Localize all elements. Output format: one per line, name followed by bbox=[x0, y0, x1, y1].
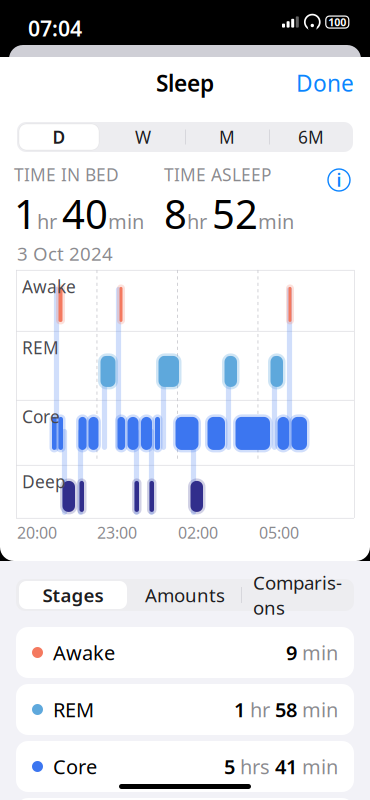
button[interactable]: Done bbox=[280, 58, 370, 108]
staticText: min bbox=[258, 208, 294, 235]
staticText: 9 bbox=[286, 639, 297, 666]
staticText: TIME IN BED bbox=[14, 163, 119, 186]
staticText: Stages bbox=[42, 583, 103, 607]
staticText: 41 bbox=[275, 753, 297, 780]
staticText: M bbox=[219, 125, 235, 148]
button[interactable]: Stages bbox=[17, 579, 129, 611]
staticText: 1 bbox=[234, 696, 245, 723]
staticText: Core bbox=[22, 405, 60, 428]
button[interactable]: 6M bbox=[269, 122, 353, 152]
staticText: 02:00 bbox=[178, 522, 218, 543]
staticText: hr bbox=[37, 208, 57, 235]
staticText: min bbox=[297, 696, 338, 723]
staticText: min bbox=[297, 753, 338, 780]
staticText: hr bbox=[187, 208, 207, 235]
staticText: 6M bbox=[298, 125, 324, 148]
staticText: 58 bbox=[275, 696, 297, 723]
button[interactable]: D bbox=[17, 122, 101, 152]
staticText: Deep bbox=[22, 470, 66, 493]
button[interactable]: M bbox=[185, 122, 269, 152]
staticText: 52 bbox=[212, 187, 258, 240]
staticText: 05:00 bbox=[259, 522, 299, 543]
staticText: Done bbox=[296, 68, 354, 98]
staticText: Amounts bbox=[145, 583, 225, 607]
staticText: D bbox=[52, 125, 65, 148]
staticText: 8 bbox=[164, 187, 187, 240]
staticText: 40 bbox=[62, 187, 108, 240]
staticText: 23:00 bbox=[97, 522, 137, 543]
staticText: 20:00 bbox=[17, 522, 57, 543]
staticText: W bbox=[135, 125, 151, 148]
staticText: hrs bbox=[235, 753, 275, 780]
button[interactable]: W bbox=[101, 122, 185, 152]
staticText: min bbox=[297, 639, 338, 666]
staticText: Awake bbox=[43, 639, 115, 666]
button[interactable]: Amounts bbox=[129, 579, 241, 611]
staticText: TIME ASLEEP bbox=[164, 163, 271, 186]
button[interactable]: About sleep data bbox=[322, 163, 356, 197]
button[interactable]: Core bbox=[16, 741, 354, 792]
staticText: Awake bbox=[22, 275, 76, 298]
staticText: hr bbox=[245, 696, 275, 723]
staticText: 1 bbox=[14, 187, 37, 240]
staticText: 07:04 bbox=[28, 14, 82, 42]
staticText: Core bbox=[43, 753, 97, 780]
staticText: Comparisons bbox=[253, 570, 342, 620]
staticText: REM bbox=[22, 336, 59, 359]
staticText: 100 bbox=[328, 15, 346, 29]
staticText: Sleep bbox=[156, 68, 214, 98]
button[interactable]: REM bbox=[16, 684, 354, 735]
staticText: REM bbox=[43, 696, 94, 723]
staticText: i bbox=[336, 168, 341, 191]
staticText: min bbox=[108, 208, 144, 235]
button[interactable]: Awake bbox=[16, 627, 354, 678]
staticText: 3 Oct 2024 bbox=[17, 241, 113, 266]
staticText: 5 bbox=[224, 753, 235, 780]
button[interactable]: Comparisons bbox=[241, 579, 353, 611]
